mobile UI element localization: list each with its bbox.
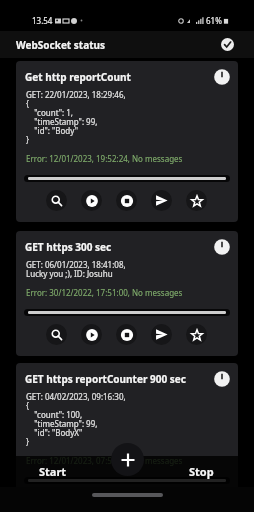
button[interactable]: Stop (116, 492, 137, 512)
staticText: Start (39, 464, 67, 479)
staticText: GET: 04/02/2023, 09:16:30, (26, 391, 126, 402)
staticText: Stop (189, 464, 214, 479)
staticText: "timeStamp": 99, (26, 116, 98, 127)
button[interactable]: Favorite (186, 324, 207, 345)
staticText: "count": 1, (26, 107, 73, 118)
staticText: "timeStamp": 99, (26, 418, 98, 429)
staticText: Get http reportCount (25, 70, 210, 84)
button[interactable]: GET https 300 sec (16, 231, 238, 356)
staticText: GET https reportCounter 900 sec (25, 372, 210, 386)
button[interactable]: Play (81, 324, 102, 345)
staticText: GET: 22/01/2023, 18:29:46, (26, 89, 126, 100)
button[interactable]: Favorite (186, 190, 207, 211)
staticText: GET https 300 sec (25, 240, 210, 254)
staticText: GET: 06/01/2023, 18:41:08, (26, 259, 126, 270)
button[interactable]: Get http reportCount (16, 61, 238, 222)
staticText: { (26, 98, 30, 109)
staticText: "id": "Body" (26, 125, 78, 136)
staticText: { (26, 400, 30, 411)
button[interactable]: GET https reportCounter 900 sec (16, 363, 238, 512)
button[interactable]: Play (81, 190, 102, 211)
staticText: } (26, 134, 30, 145)
staticText: 61% (206, 15, 222, 26)
button[interactable]: Play (81, 492, 102, 512)
button[interactable]: Add (111, 443, 144, 476)
staticText: Error: 30/12/2022, 17:51:00, No messages (26, 287, 183, 298)
button[interactable]: Stop (116, 190, 137, 211)
button[interactable]: Search (46, 324, 67, 345)
staticText: WebSocket status (16, 38, 105, 52)
staticText: 13.54 (32, 15, 53, 26)
staticText: } (26, 436, 30, 447)
button[interactable]: Send (151, 492, 172, 512)
staticText: "count": 100, (26, 409, 83, 420)
staticText: Error: 12/01/2023, 19:52:24, No messages (26, 153, 183, 164)
button[interactable]: Stop (116, 324, 137, 345)
button[interactable]: Send (151, 324, 172, 345)
button[interactable]: Send (151, 190, 172, 211)
button[interactable]: Status (214, 239, 230, 255)
button[interactable]: Connected (221, 38, 234, 51)
staticText: "id": "BodyX" (26, 427, 83, 438)
button[interactable]: Status (214, 69, 230, 85)
button[interactable]: Status (214, 371, 230, 387)
staticText: Error: 12/01/2023, 07:54:38, No messages (26, 455, 183, 466)
button[interactable]: Stop (149, 460, 254, 482)
button[interactable]: Start (0, 460, 105, 482)
button[interactable]: Search (46, 190, 67, 211)
staticText: Lucky you ;), ID: Josuhu (26, 268, 113, 279)
